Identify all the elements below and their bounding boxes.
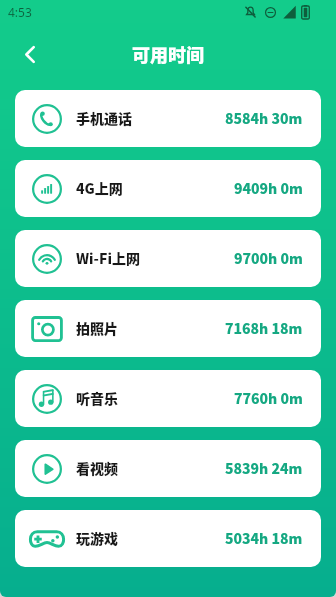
button[interactable]: Wi-Fi上网	[15, 230, 321, 287]
staticText: 玩游戏	[76, 528, 118, 548]
button[interactable]: 玩游戏	[15, 510, 321, 567]
staticText: 5034h 18m	[225, 528, 303, 548]
staticText: Wi-Fi上网	[76, 248, 140, 268]
button[interactable]: Back	[12, 36, 48, 72]
staticText: 8584h 30m	[225, 108, 303, 128]
button[interactable]: 看视频	[15, 440, 321, 497]
button[interactable]: 拍照片	[15, 300, 321, 357]
staticText: 看视频	[76, 458, 118, 478]
button[interactable]: 4G上网	[15, 160, 321, 217]
staticText: 听音乐	[76, 388, 118, 408]
staticText: 手机通话	[76, 108, 132, 128]
staticText: 4G上网	[76, 178, 123, 198]
button[interactable]: 手机通话	[15, 90, 321, 147]
staticText: 7168h 18m	[225, 318, 303, 338]
staticText: 9700h 0m	[234, 248, 303, 268]
staticText: 7760h 0m	[234, 388, 303, 408]
staticText: 9409h 0m	[234, 178, 303, 198]
staticText: 拍照片	[76, 318, 118, 338]
staticText: 可用时间	[132, 41, 204, 67]
staticText: 5839h 24m	[225, 458, 303, 478]
staticText: 4:53	[8, 4, 32, 20]
button[interactable]: 听音乐	[15, 370, 321, 427]
